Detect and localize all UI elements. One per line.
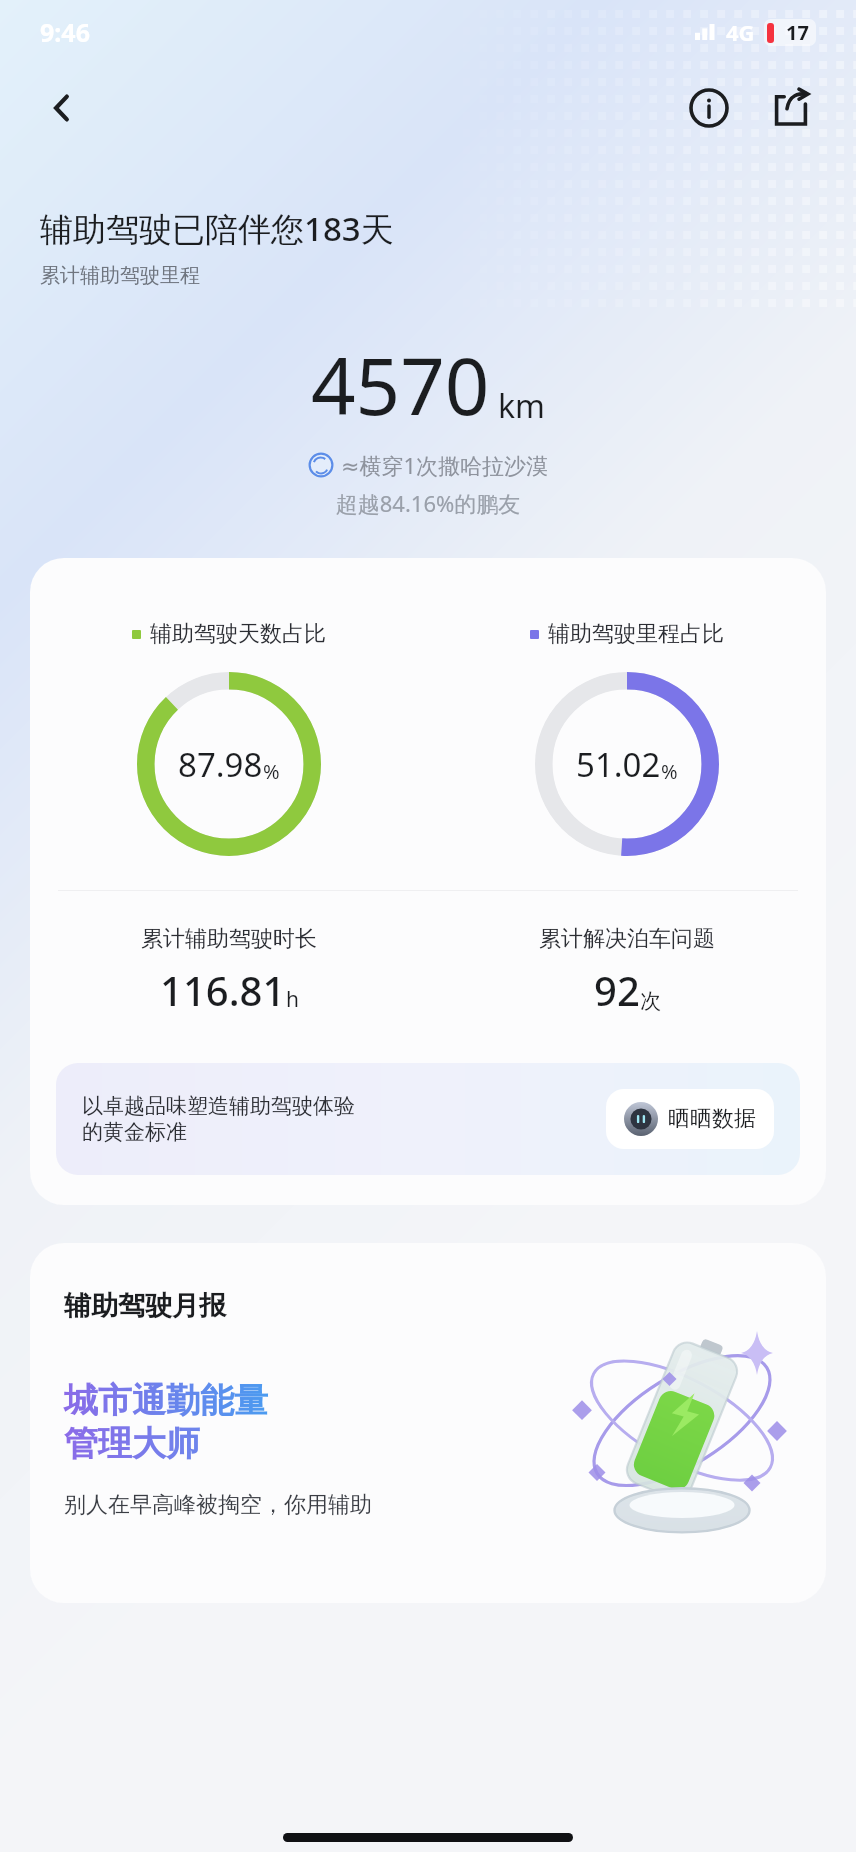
staticText: 管理大师: [64, 1422, 200, 1465]
staticText: 辅助驾驶月报: [64, 1289, 226, 1323]
staticText: km: [498, 384, 546, 428]
staticText: %: [263, 758, 280, 785]
staticText: 的黄金标准: [82, 1119, 187, 1145]
staticText: h: [286, 985, 299, 1014]
staticText: 城市通勤能量: [64, 1379, 268, 1422]
staticText: 9:46: [40, 15, 90, 49]
staticText: 累计辅助驾驶时长: [141, 925, 317, 953]
staticText: 以卓越品味塑造辅助驾驶体验: [82, 1093, 355, 1119]
staticText: 超越84.16%的鹏友: [0, 488, 856, 518]
button[interactable]: 辅助驾驶天数占比: [30, 558, 826, 1205]
staticText: %: [661, 758, 678, 785]
staticText: 累计解决泊车问题: [539, 925, 715, 953]
button[interactable]: Share: [760, 77, 822, 139]
staticText: 辅助驾驶已陪伴您183天: [40, 206, 394, 251]
button[interactable]: Info: [678, 77, 740, 139]
staticText: 累计辅助驾驶里程: [40, 263, 200, 288]
button[interactable]: 晒晒数据: [606, 1089, 774, 1149]
staticText: 4570: [311, 332, 490, 438]
staticText: 晒晒数据: [668, 1105, 756, 1133]
button[interactable]: 以卓越品味塑造辅助驾驶体验: [56, 1063, 800, 1175]
button[interactable]: 辅助驾驶月报: [30, 1243, 826, 1603]
staticText: 51.02: [576, 742, 661, 787]
staticText: 辅助驾驶里程占比: [548, 620, 724, 648]
button[interactable]: Back: [34, 80, 90, 136]
staticText: 17: [786, 19, 809, 46]
staticText: 别人在早高峰被掏空，你用辅助: [64, 1491, 372, 1519]
staticText: 辅助驾驶天数占比: [150, 620, 326, 648]
staticText: 4G: [726, 17, 755, 47]
staticText: 92: [594, 963, 640, 1017]
staticText: 87.98: [178, 742, 263, 787]
staticText: 次: [640, 988, 661, 1014]
staticText: ≈横穿1次撒哈拉沙漠: [341, 450, 549, 480]
staticText: 116.81: [160, 963, 286, 1017]
